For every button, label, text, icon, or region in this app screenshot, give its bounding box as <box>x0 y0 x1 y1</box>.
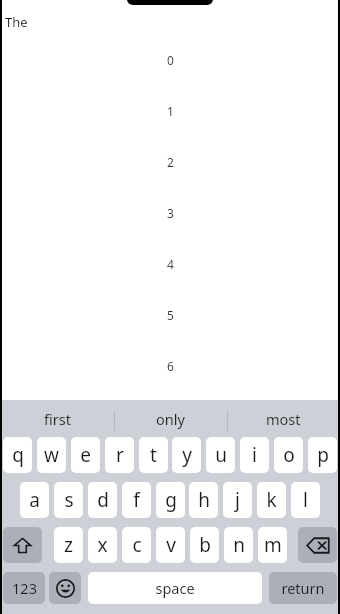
button[interactable]: u <box>206 437 235 473</box>
button[interactable]: only <box>114 400 227 437</box>
staticText: 123 <box>12 578 37 598</box>
button[interactable]: s <box>54 482 83 518</box>
button[interactable]: l <box>291 482 320 518</box>
button[interactable]: 2 <box>0 154 340 205</box>
staticText: g <box>165 487 177 513</box>
staticText: d <box>97 487 109 513</box>
staticText: v <box>166 532 176 558</box>
button[interactable]: 5 <box>0 307 340 358</box>
button[interactable]: o <box>274 437 303 473</box>
staticText: space <box>155 578 195 598</box>
button[interactable]: c <box>122 527 151 563</box>
button[interactable]: 0 <box>0 52 340 103</box>
staticText: n <box>233 532 245 558</box>
staticText: 3 <box>167 205 174 221</box>
staticText: The <box>5 13 28 31</box>
button[interactable]: first <box>0 400 114 437</box>
staticText: first <box>44 409 71 429</box>
staticText: k <box>266 487 277 513</box>
staticText: 6 <box>167 358 174 374</box>
button[interactable]: h <box>189 482 218 518</box>
button[interactable]: t <box>139 437 168 473</box>
button[interactable]: 6 <box>0 358 340 409</box>
staticText: l <box>303 487 308 513</box>
staticText: q <box>12 442 24 468</box>
staticText: most <box>266 409 301 429</box>
button[interactable]: d <box>88 482 117 518</box>
button[interactable]: Backspace <box>298 527 337 563</box>
button[interactable]: Emoji keyboard <box>49 572 81 604</box>
button[interactable]: i <box>240 437 269 473</box>
button[interactable]: g <box>156 482 185 518</box>
button[interactable]: p <box>308 437 337 473</box>
staticText: r <box>116 442 124 468</box>
button[interactable]: z <box>54 527 83 563</box>
staticText: m <box>264 532 282 558</box>
button[interactable]: j <box>223 482 252 518</box>
staticText: only <box>156 409 185 429</box>
staticText: p <box>317 442 329 468</box>
button[interactable]: Shift <box>3 527 42 563</box>
button[interactable]: y <box>172 437 201 473</box>
button[interactable]: return <box>269 572 337 604</box>
staticText: t <box>150 442 157 468</box>
staticText: 5 <box>167 307 174 323</box>
staticText: i <box>252 442 257 468</box>
staticText: c <box>132 532 142 558</box>
staticText: u <box>215 442 227 468</box>
staticText: o <box>283 442 295 468</box>
button[interactable]: v <box>156 527 185 563</box>
button[interactable]: r <box>105 437 134 473</box>
button[interactable]: a <box>20 482 49 518</box>
staticText: z <box>64 532 73 558</box>
button[interactable]: q <box>3 437 32 473</box>
button[interactable]: n <box>224 527 253 563</box>
button[interactable]: f <box>122 482 151 518</box>
staticText: return <box>281 578 325 598</box>
staticText: a <box>29 487 40 513</box>
button[interactable]: 123 <box>3 572 45 604</box>
button[interactable]: 4 <box>0 256 340 307</box>
button[interactable]: m <box>258 527 287 563</box>
staticText: w <box>44 442 59 468</box>
button[interactable]: b <box>190 527 219 563</box>
staticText: 4 <box>167 256 174 272</box>
staticText: b <box>199 532 211 558</box>
button[interactable]: space <box>88 572 262 604</box>
staticText: e <box>80 442 91 468</box>
button[interactable]: x <box>88 527 117 563</box>
staticText: 2 <box>167 154 174 170</box>
staticText: h <box>198 487 210 513</box>
staticText: 1 <box>167 103 174 119</box>
button[interactable]: 1 <box>0 103 340 154</box>
staticText: x <box>97 532 108 558</box>
button[interactable]: most <box>227 400 340 437</box>
button[interactable]: w <box>37 437 66 473</box>
button[interactable]: k <box>257 482 286 518</box>
button[interactable]: 3 <box>0 205 340 256</box>
staticText: j <box>235 487 240 513</box>
staticText: y <box>182 442 192 468</box>
staticText: f <box>133 487 140 513</box>
button[interactable]: e <box>71 437 100 473</box>
staticText: s <box>64 487 74 513</box>
staticText: 0 <box>167 52 174 68</box>
